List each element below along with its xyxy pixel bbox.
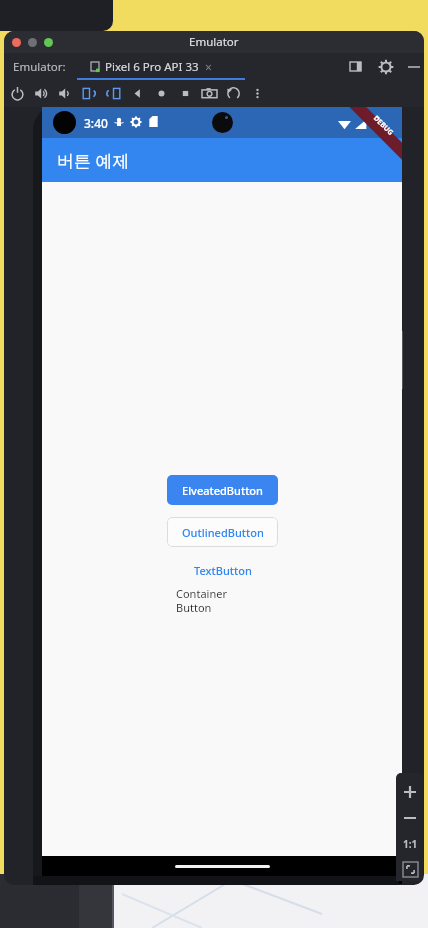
staticText: Emulator: [13, 59, 66, 75]
button[interactable]: Container Button [167, 586, 278, 615]
staticText: 1:1 [403, 837, 418, 851]
button[interactable]: Power [10, 86, 25, 101]
button[interactable]: Screenshot [202, 86, 217, 101]
button[interactable]: Fit to screen [398, 858, 422, 881]
button[interactable]: Minimize [28, 38, 37, 47]
button[interactable]: Rotate right [106, 86, 121, 101]
button[interactable]: 1:1 [398, 832, 422, 856]
button[interactable]: Settings [378, 59, 394, 75]
button[interactable]: More [250, 86, 265, 101]
button[interactable]: Home gesture [175, 865, 270, 868]
button[interactable]: ElveatedButton [167, 475, 278, 505]
button[interactable]: TextButton [167, 559, 278, 581]
staticText: Container Button [176, 586, 227, 615]
button[interactable]: Zoom in [398, 780, 422, 804]
staticText: 3:40 [84, 115, 108, 131]
button[interactable]: Panel [348, 59, 364, 75]
button[interactable]: Pixel 6 Pro API 33 [90, 59, 212, 75]
staticText: DEBUG [371, 114, 396, 138]
staticText: ElveatedButton [182, 483, 263, 498]
button[interactable]: Close [12, 38, 21, 47]
button[interactable]: More [408, 61, 420, 73]
button[interactable]: Back [130, 86, 145, 101]
staticText: TextButton [194, 563, 252, 578]
button[interactable]: Rotate left [82, 86, 97, 101]
button[interactable]: Overview [178, 86, 193, 101]
staticText: Pixel 6 Pro API 33 [105, 59, 199, 75]
button[interactable]: Zoom [44, 38, 53, 47]
staticText: 버튼 예제 [57, 149, 130, 172]
staticText: × [205, 59, 212, 75]
staticText: Emulator [189, 34, 239, 50]
staticText: OutlinedButton [182, 525, 264, 540]
button[interactable]: Zoom out [398, 806, 422, 830]
button[interactable]: Volume up [34, 86, 49, 101]
button[interactable]: OutlinedButton [167, 517, 278, 547]
button[interactable]: Volume down [58, 86, 73, 101]
button[interactable]: History [226, 86, 241, 101]
button[interactable]: Home [154, 86, 169, 101]
